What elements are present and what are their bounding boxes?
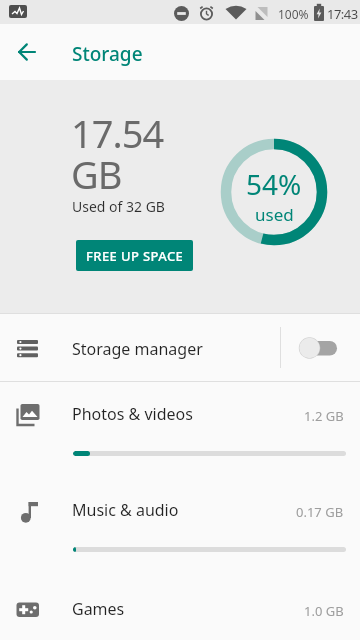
button[interactable]: Music & audio — [0, 478, 360, 574]
button[interactable]: Photos & videos — [0, 382, 360, 478]
button[interactable]: Storage manager — [0, 314, 360, 381]
staticText: used — [255, 203, 294, 226]
staticText: Games — [72, 598, 125, 620]
staticText: 0.17 GB — [296, 503, 344, 521]
staticText: 1.2 GB — [304, 407, 344, 425]
staticText: Photos & videos — [72, 403, 193, 425]
button[interactable]: FREE UP SPACE — [76, 240, 193, 271]
button[interactable] — [295, 336, 343, 360]
staticText: 54% — [246, 165, 302, 203]
staticText: FREE UP SPACE — [86, 247, 184, 265]
staticText: Music & audio — [72, 499, 179, 521]
staticText: 17.54 — [71, 107, 164, 159]
staticText: Storage manager — [72, 338, 203, 360]
staticText: 1.0 GB — [304, 602, 344, 620]
staticText: Used of 32 GB — [72, 197, 165, 216]
staticText: 17:43 — [327, 5, 358, 23]
staticText: GB — [71, 148, 122, 200]
button[interactable] — [6, 31, 48, 73]
button[interactable]: Games — [0, 574, 360, 640]
staticText: 100% — [278, 6, 309, 22]
staticText: Storage — [72, 41, 143, 67]
